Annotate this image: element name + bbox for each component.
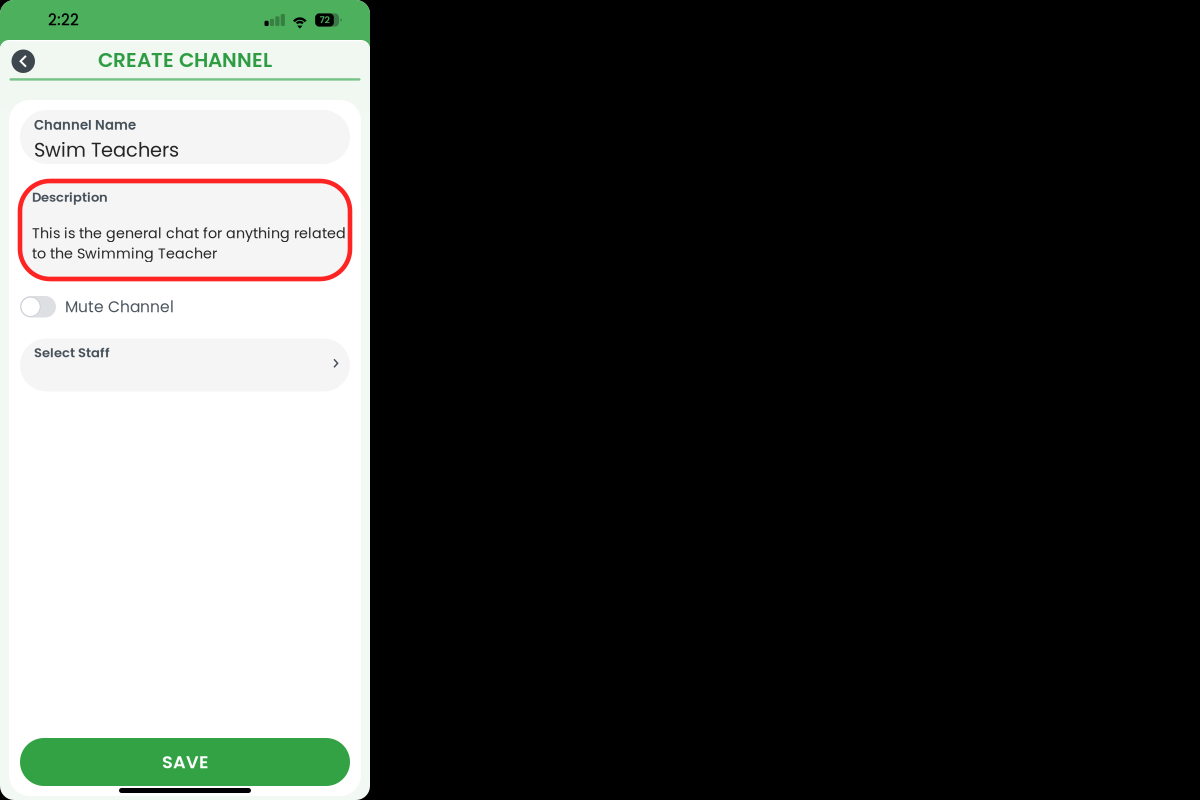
staticText: SAVE xyxy=(162,750,208,774)
button[interactable]: Back xyxy=(11,49,35,73)
staticText: Select Staff xyxy=(34,343,110,362)
button[interactable]: Select Staff xyxy=(20,338,350,391)
staticText: 2:22 xyxy=(48,9,79,31)
button[interactable]: Mute Channel xyxy=(20,296,56,317)
staticText: Swim Teachers xyxy=(34,136,179,164)
staticText: This is the general chat for anything re… xyxy=(32,223,346,263)
button[interactable]: SAVE xyxy=(20,738,350,786)
staticText: CREATE CHANNEL xyxy=(98,46,272,74)
staticText: 72 xyxy=(319,13,329,27)
staticText: Description xyxy=(32,188,108,206)
staticText: Mute Channel xyxy=(65,296,174,318)
staticText: Channel Name xyxy=(34,116,136,134)
